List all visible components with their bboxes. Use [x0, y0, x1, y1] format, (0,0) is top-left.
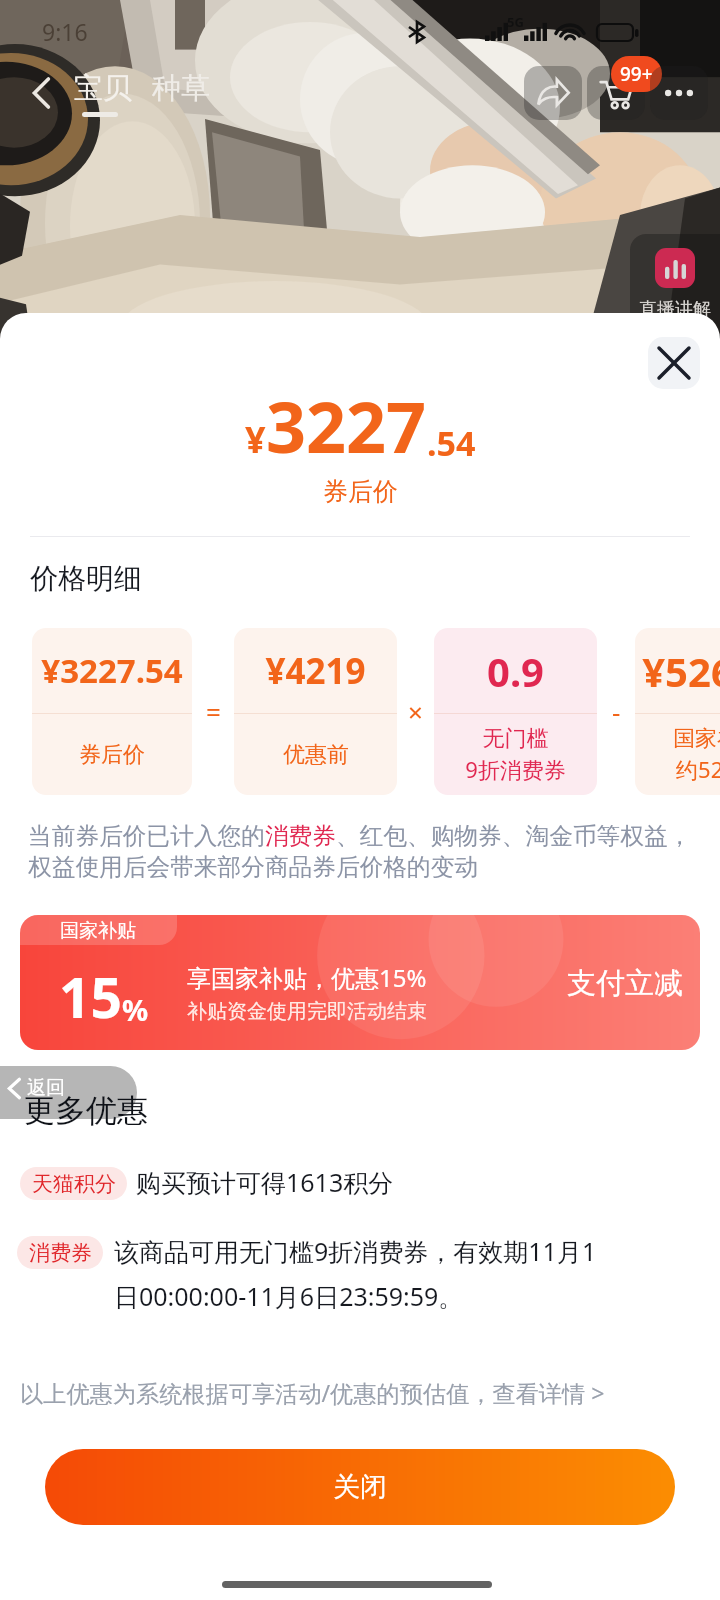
- staticText: 优惠前: [283, 741, 349, 769]
- staticText: 消费券: [29, 1240, 92, 1266]
- staticText: 15: [59, 959, 122, 1034]
- staticText: 当前券后价已计入您的消费券、红包、购物券、淘金币等权益，权益使用后会带来部分商品…: [28, 821, 692, 882]
- staticText: 以上优惠为系统根据可享活动/优惠的预估值，查看详情 >: [20, 1377, 605, 1409]
- button[interactable]: 直播讲解: [630, 234, 720, 345]
- staticText: %: [122, 990, 149, 1029]
- button[interactable]: 宝贝: [74, 70, 132, 117]
- staticText: 3227: [266, 378, 427, 473]
- button[interactable]: ¥4219: [234, 628, 397, 795]
- button[interactable]: 关闭: [45, 1449, 675, 1525]
- staticText: ¥526.19: [642, 644, 720, 698]
- button[interactable]: 种草: [152, 70, 210, 107]
- staticText: 购买预计可得1613积分: [136, 1165, 628, 1199]
- button[interactable]: 天猫积分: [20, 1167, 127, 1200]
- staticText: 更多优惠: [24, 1091, 148, 1130]
- staticText: 券后价: [323, 476, 398, 507]
- button[interactable]: Share: [524, 66, 582, 120]
- staticText: 无门槛 9折消费券: [465, 725, 566, 785]
- staticText: 宝贝: [74, 70, 132, 107]
- button[interactable]: Cart: [587, 66, 645, 120]
- staticText: ×: [408, 694, 423, 729]
- staticText: 补贴资金使用完即活动结束: [187, 999, 427, 1024]
- staticText: 直播讲解: [639, 298, 711, 321]
- staticText: 国家补贴: [60, 919, 136, 943]
- staticText: 关闭: [333, 1470, 387, 1504]
- staticText: 返回: [27, 1076, 65, 1100]
- button[interactable]: ¥3227.54: [32, 628, 192, 795]
- button[interactable]: Close: [648, 337, 700, 389]
- button[interactable]: 消费券: [17, 1236, 103, 1269]
- staticText: 券后价: [79, 741, 145, 769]
- staticText: ¥3227.54: [41, 648, 183, 693]
- staticText: 0.9: [487, 644, 544, 698]
- staticText: 天猫积分: [32, 1171, 116, 1197]
- button[interactable]: ¥526.19: [635, 628, 720, 795]
- staticText: 价格明细: [30, 561, 142, 596]
- staticText: =: [206, 694, 221, 729]
- staticText: ¥4219: [265, 647, 366, 695]
- button[interactable]: Back: [20, 70, 64, 116]
- button[interactable]: 国家补贴: [20, 915, 700, 1050]
- staticText: 9:16: [42, 16, 88, 47]
- staticText: 种草: [152, 70, 210, 107]
- staticText: .54: [427, 420, 476, 466]
- staticText: ¥: [245, 415, 266, 464]
- staticText: 支付立减: [567, 965, 683, 1002]
- button[interactable]: More: [650, 66, 708, 120]
- staticText: -: [612, 694, 621, 729]
- staticText: 国家补贴 约526元: [673, 725, 720, 785]
- staticText: 99+: [620, 61, 653, 87]
- staticText: 该商品可用无门槛9折消费券，有效期11月1日00:00:00-11月6日23:5…: [114, 1234, 606, 1313]
- staticText: 5G: [507, 13, 524, 31]
- staticText: 享国家补贴，优惠15%: [187, 961, 427, 994]
- button[interactable]: 返回: [0, 1066, 137, 1119]
- button[interactable]: 0.9: [434, 628, 597, 795]
